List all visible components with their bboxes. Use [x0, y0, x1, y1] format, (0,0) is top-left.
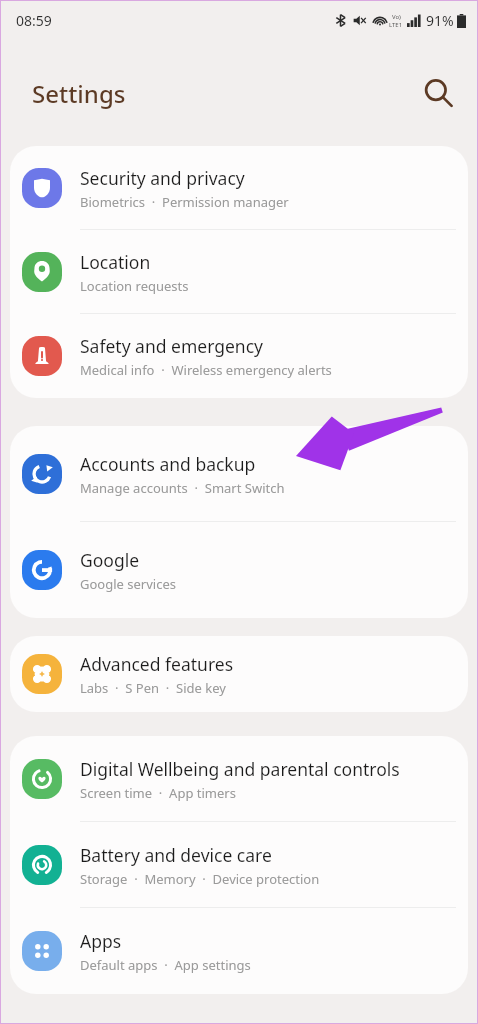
- staticText: Security and privacy: [80, 166, 245, 190]
- staticText: Accounts and backup: [80, 452, 256, 476]
- staticText: Google services: [80, 575, 176, 593]
- staticText: Manage accounts · Smart Switch: [80, 479, 285, 497]
- staticText: LTE1: [389, 21, 403, 29]
- staticText: Screen time · App timers: [80, 784, 236, 802]
- button[interactable]: Google: [10, 522, 468, 618]
- staticText: Location requests: [80, 277, 189, 295]
- button[interactable]: Digital Wellbeing and parental controls: [10, 736, 468, 822]
- staticText: Default apps · App settings: [80, 956, 251, 974]
- staticText: Labs · S Pen · Side key: [80, 679, 226, 697]
- button[interactable]: Accounts and backup: [10, 426, 468, 522]
- staticText: Medical info · Wireless emergency alerts: [80, 361, 332, 379]
- staticText: Safety and emergency: [80, 334, 263, 358]
- staticText: Location: [80, 250, 151, 274]
- staticText: Battery and device care: [80, 843, 272, 867]
- staticText: Biometrics · Permission manager: [80, 193, 289, 211]
- button[interactable]: Battery and device care: [10, 822, 468, 908]
- staticText: Storage · Memory · Device protection: [80, 870, 320, 888]
- button[interactable]: Search: [420, 75, 456, 111]
- staticText: 91%: [426, 11, 454, 30]
- staticText: Digital Wellbeing and parental controls: [80, 757, 400, 781]
- staticText: Settings: [32, 77, 126, 110]
- staticText: Apps: [80, 929, 122, 953]
- button[interactable]: Security and privacy: [10, 146, 468, 230]
- button[interactable]: Advanced features: [10, 636, 468, 712]
- button[interactable]: Location: [10, 230, 468, 314]
- button[interactable]: Safety and emergency: [10, 314, 468, 398]
- staticText: Advanced features: [80, 652, 234, 676]
- staticText: Vo): [392, 13, 401, 21]
- button[interactable]: Apps: [10, 908, 468, 994]
- staticText: 08:59: [16, 11, 52, 30]
- staticText: Google: [80, 548, 140, 572]
